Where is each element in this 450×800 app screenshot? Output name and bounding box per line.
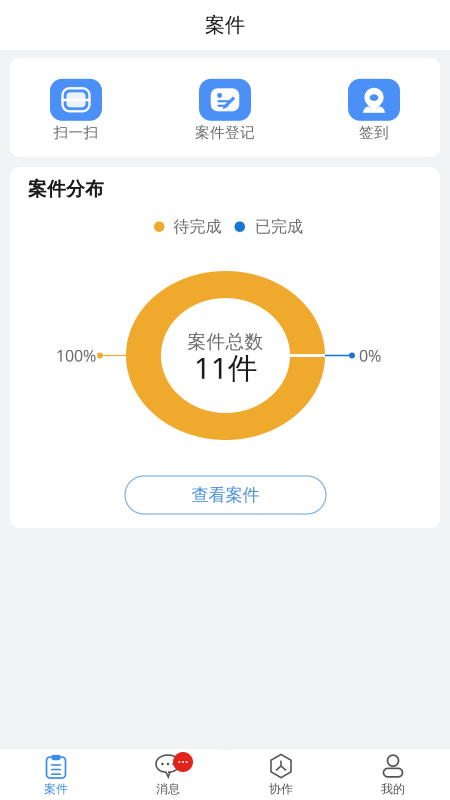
staticText: 我的: [381, 781, 405, 796]
staticText: 签到: [359, 123, 389, 141]
button[interactable]: 查看案件: [125, 476, 326, 514]
staticText: 案件登记: [195, 123, 255, 141]
button[interactable]: 扫一扫: [26, 58, 126, 157]
staticText: 案件分布: [28, 177, 104, 200]
staticText: 待完成: [173, 217, 221, 237]
staticText: 0%: [359, 345, 381, 366]
staticText: 扫一扫: [53, 123, 98, 141]
staticText: 协作: [269, 781, 293, 796]
staticText: 已完成: [255, 217, 303, 237]
staticText: 案件: [205, 13, 245, 37]
staticText: 消息: [156, 781, 180, 796]
staticText: 11件: [194, 348, 257, 387]
staticText: 案件总数: [187, 330, 263, 353]
button[interactable]: 协作: [241, 754, 321, 796]
staticText: 100%: [56, 345, 96, 366]
staticText: 查看案件: [191, 484, 259, 506]
button[interactable]: 消息: [128, 754, 208, 796]
button[interactable]: 签到: [324, 58, 424, 157]
staticText: 案件: [44, 781, 68, 796]
button[interactable]: 案件登记: [175, 58, 275, 157]
button[interactable]: 我的: [353, 754, 433, 796]
button[interactable]: 案件: [16, 754, 96, 796]
